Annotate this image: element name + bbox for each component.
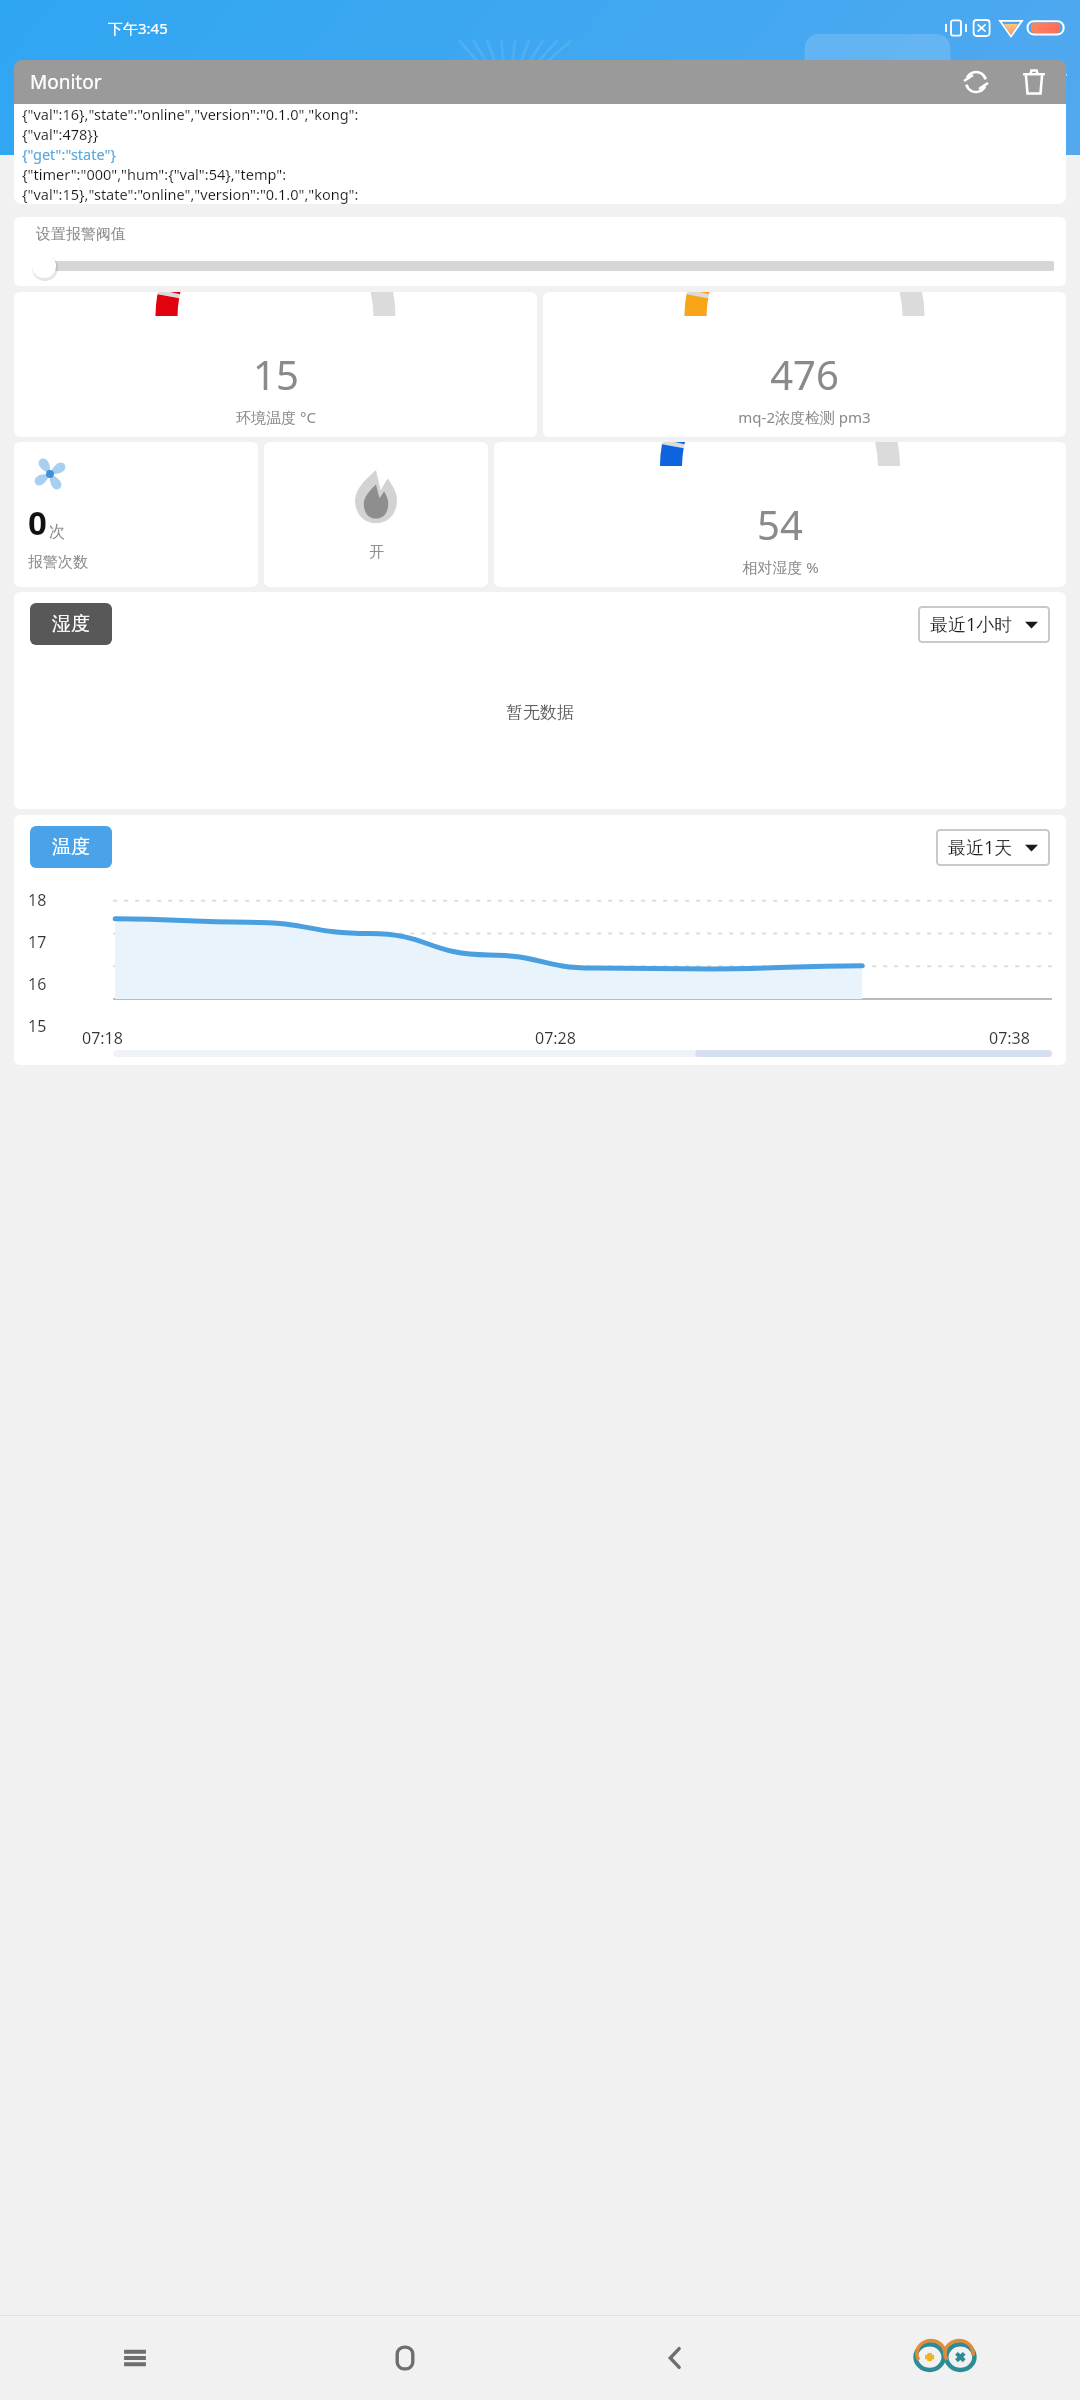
button[interactable]: Delete (1012, 60, 1056, 104)
staticText: 15 (253, 347, 299, 401)
staticText: 476 (770, 347, 839, 401)
staticText: {"get":"state"} (22, 144, 116, 164)
button[interactable]: 最近1小时 (918, 606, 1050, 643)
button[interactable]: 54 (494, 442, 1066, 587)
staticText: 相对湿度 % (742, 557, 819, 577)
button[interactable]: More options (952, 53, 1016, 117)
staticText: {"val":16},"state":"online","version":"0… (22, 104, 359, 124)
staticText: 17 (28, 931, 47, 953)
staticText: 最近1天 (948, 835, 1013, 860)
button[interactable]: Recent apps (0, 2316, 270, 2400)
staticText: {"val":478}} (22, 124, 99, 144)
staticText: 07:28 (535, 1027, 576, 1049)
staticText: 07:18 (82, 1027, 123, 1049)
button[interactable]: 15 (14, 292, 537, 437)
staticText: mq-2浓度检测 pm3 (738, 407, 871, 427)
staticText: 0 (28, 500, 47, 545)
button[interactable]: 476 (543, 292, 1066, 437)
staticText: 18 (28, 889, 47, 911)
staticText: 下午3:45 (108, 18, 168, 38)
staticText: (在线) (487, 93, 519, 109)
button[interactable]: 0 (14, 442, 258, 587)
button[interactable]: 最近1天 (936, 829, 1050, 866)
staticText: 报警次数 (28, 553, 88, 572)
staticText: 最近1小时 (930, 612, 1013, 637)
button[interactable]: Back (540, 2316, 810, 2400)
staticText: 15 (28, 1015, 47, 1037)
staticText: 温度 (52, 835, 90, 859)
button[interactable]: Back (0, 46, 72, 124)
button[interactable]: Refresh (954, 60, 998, 104)
staticText: {"timer":"000","hum":{"val":54},"temp": (22, 164, 287, 184)
staticText: 54 (757, 497, 803, 551)
staticText: 16 (28, 973, 47, 995)
staticText: 设置报警阀值 (36, 225, 126, 244)
staticText: 湿度 (52, 612, 90, 636)
staticText: 暂无数据 (506, 702, 574, 723)
staticText: 次 (49, 522, 65, 542)
staticText: 07:38 (989, 1027, 1030, 1049)
button[interactable]: Edit (1016, 53, 1080, 117)
staticText: {"val":15},"state":"online","version":"0… (22, 184, 359, 204)
staticText: 环境温度 °C (236, 407, 316, 427)
button[interactable]: 设置报警阀值 (14, 217, 1066, 286)
staticText: Monitor (30, 69, 102, 95)
staticText: 开 (369, 543, 384, 562)
button[interactable]: 湿度 (30, 603, 112, 645)
button[interactable]: 开 (264, 442, 488, 587)
button[interactable]: 温度 (30, 826, 112, 868)
button[interactable]: Home (270, 2316, 540, 2400)
